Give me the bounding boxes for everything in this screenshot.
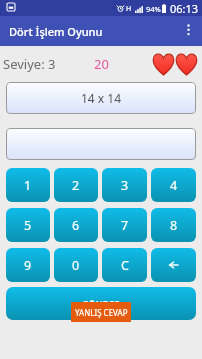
- button[interactable]: 3: [102, 168, 147, 202]
- button[interactable]: 7: [102, 208, 147, 242]
- staticText: GÖNDER: [82, 298, 120, 310]
- button[interactable]: Backspace: [151, 248, 196, 282]
- staticText: 4: [170, 177, 178, 194]
- button[interactable]: YANLIŞ CEVAP: [71, 302, 131, 322]
- staticText: 1: [24, 177, 32, 194]
- staticText: Dört İşlem Oyunu: [9, 24, 103, 39]
- button[interactable]: More options: [176, 18, 202, 44]
- button[interactable]: 1: [6, 168, 50, 202]
- staticText: C: [121, 257, 129, 274]
- staticText: 8: [170, 217, 178, 234]
- staticText: 06:13: [170, 1, 199, 16]
- button[interactable]: 8: [151, 208, 196, 242]
- staticText: 6: [72, 217, 80, 234]
- button[interactable]: 5: [6, 208, 50, 242]
- button[interactable]: 2: [54, 168, 98, 202]
- staticText: 20: [94, 55, 109, 73]
- button[interactable]: 9: [6, 248, 50, 282]
- button[interactable]: 4: [151, 168, 196, 202]
- staticText: H: [126, 4, 132, 14]
- staticText: YANLIŞ CEVAP: [75, 307, 128, 318]
- staticText: 9: [24, 257, 32, 274]
- button[interactable]: GÖNDER: [6, 287, 196, 320]
- button[interactable]: 0: [54, 248, 98, 282]
- button[interactable]: 14 x 14: [6, 82, 196, 114]
- button[interactable]: [6, 128, 196, 160]
- staticText: Seviye: 3: [3, 55, 56, 73]
- staticText: 2: [72, 177, 80, 194]
- button[interactable]: C: [102, 248, 147, 282]
- staticText: 3: [121, 177, 129, 194]
- staticText: 7: [121, 217, 129, 234]
- staticText: 14 x 14: [81, 90, 122, 106]
- staticText: 94%: [146, 4, 161, 14]
- staticText: 5: [24, 217, 32, 234]
- button[interactable]: 6: [54, 208, 98, 242]
- staticText: 0: [72, 257, 80, 274]
